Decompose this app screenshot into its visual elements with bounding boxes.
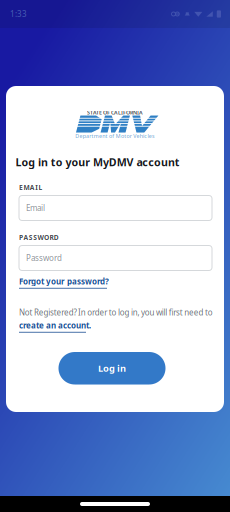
staticText: Log in xyxy=(98,362,126,374)
button[interactable]: Email xyxy=(19,195,212,220)
staticText: Password xyxy=(26,253,62,263)
button[interactable]: Forgot your password? xyxy=(19,276,212,289)
staticText: Log in to your MyDMV account xyxy=(15,155,180,169)
staticText: PASSWORD xyxy=(19,233,59,242)
staticText: Email xyxy=(26,203,45,213)
staticText: EMAIL xyxy=(19,183,43,192)
staticText: Forgot your password? xyxy=(19,276,109,287)
staticText: Not Registered? In order to log in, you … xyxy=(19,307,213,318)
staticText: 1:33 xyxy=(10,9,27,19)
staticText: Department of Motor Vehicles xyxy=(75,132,155,140)
staticText: create an account. xyxy=(19,320,91,331)
button[interactable]: Log in xyxy=(58,352,165,384)
button[interactable]: create an account. xyxy=(19,320,212,333)
button[interactable]: Password xyxy=(19,245,212,270)
staticText: STATE OF CALIFORNIA xyxy=(87,109,143,116)
